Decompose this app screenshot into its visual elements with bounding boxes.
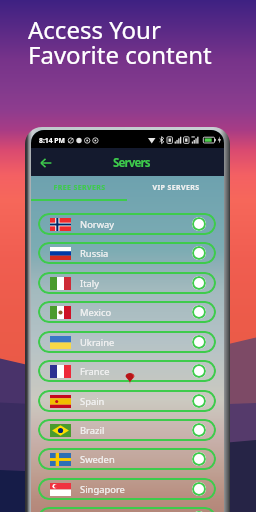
button[interactable]: Singapore	[38, 478, 216, 500]
staticText: Servers	[113, 155, 150, 171]
button[interactable]: FREE SERVERS	[31, 176, 127, 201]
staticText: Spain	[80, 395, 105, 408]
button[interactable]: Netherlands	[38, 507, 216, 512]
button[interactable]: Russia	[38, 242, 216, 264]
button[interactable]: Ukraine	[38, 331, 216, 353]
staticText: VIP SERVERS	[152, 183, 200, 193]
button[interactable]: France	[38, 360, 216, 382]
button[interactable]: Norway	[38, 213, 216, 235]
staticText: Ukraine	[80, 336, 115, 349]
button[interactable]: Spain	[38, 390, 216, 412]
button[interactable]: Brazil	[38, 419, 216, 441]
button[interactable]: Mexico	[38, 301, 216, 323]
staticText: Russia	[80, 247, 109, 260]
button[interactable]: Back	[36, 153, 55, 172]
staticText: 8:14 PM	[39, 136, 65, 145]
staticText: Norway	[80, 218, 115, 231]
staticText: Sweden	[80, 453, 115, 466]
button[interactable]: VIP SERVERS	[127, 176, 224, 201]
staticText: FREE SERVERS	[53, 183, 106, 193]
staticText: Access Your Favorite content	[28, 13, 212, 71]
staticText: Mexico	[80, 306, 112, 319]
staticText: Italy	[80, 277, 100, 290]
button[interactable]: Sweden	[38, 448, 216, 470]
staticText: Singapore	[80, 483, 125, 496]
button[interactable]: Italy	[38, 272, 216, 294]
staticText: France	[80, 365, 110, 378]
staticText: Brazil	[80, 424, 105, 437]
